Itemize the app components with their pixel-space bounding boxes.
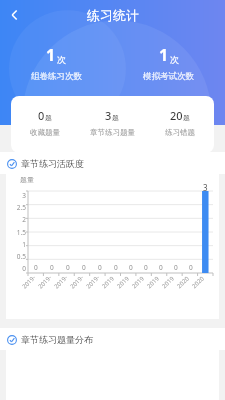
staticText: 0: [22, 264, 26, 273]
staticText: 收藏题量: [30, 128, 60, 137]
staticText: 2019-07: [84, 273, 101, 290]
staticText: 题量: [20, 175, 34, 184]
staticText: 0: [82, 263, 86, 272]
staticText: 2019-04: [36, 273, 53, 290]
button[interactable]: 0: [11, 96, 214, 153]
staticText: 题: [112, 113, 119, 122]
staticText: 练习统计: [87, 7, 139, 23]
staticText: 1: [159, 44, 169, 66]
staticText: 0: [34, 263, 38, 272]
staticText: 题: [45, 113, 52, 122]
staticText: 0: [144, 263, 148, 272]
staticText: 0: [129, 263, 133, 272]
staticText: 2019-10: [130, 274, 147, 290]
staticText: 3: [22, 191, 26, 200]
staticText: 0.5: [16, 252, 26, 261]
staticText: 次: [170, 54, 179, 65]
staticText: 0: [174, 263, 178, 272]
staticText: 2019-11: [145, 274, 162, 290]
staticText: 3: [105, 108, 112, 123]
staticText: 2.5: [16, 203, 26, 212]
staticText: 组卷练习次数: [31, 71, 82, 82]
staticText: 2019-08: [100, 274, 117, 290]
button[interactable]: 返回: [0, 0, 30, 30]
staticText: 2019-05: [52, 273, 69, 290]
staticText: 模拟考试次数: [143, 71, 194, 82]
staticText: 1.5: [16, 228, 26, 237]
staticText: 0: [159, 263, 163, 272]
staticText: 2020-02: [190, 274, 207, 290]
button[interactable]: 1: [0, 44, 112, 82]
button[interactable]: 0: [11, 108, 78, 137]
button[interactable]: 1: [112, 44, 225, 82]
staticText: 2019-06: [68, 273, 85, 290]
staticText: 2019-12: [160, 274, 177, 290]
staticText: 章节练习题量: [90, 128, 135, 137]
staticText: 2020-01: [175, 274, 192, 290]
staticText: 2: [22, 215, 26, 224]
staticText: 20: [170, 108, 183, 123]
staticText: 练习错题: [165, 128, 195, 137]
staticText: 章节练习活跃度: [21, 158, 84, 169]
staticText: 3: [203, 182, 208, 193]
staticText: 2019-09: [115, 274, 132, 290]
staticText: 0: [189, 263, 193, 272]
staticText: 0: [50, 263, 54, 272]
button[interactable]: 3: [78, 108, 146, 137]
staticText: 1: [22, 240, 26, 249]
staticText: 章节练习题量分布: [21, 334, 93, 345]
staticText: 0: [38, 108, 45, 123]
staticText: 次: [57, 54, 66, 65]
button[interactable]: 章节练习活跃度: [7, 158, 225, 169]
staticText: 0: [98, 263, 102, 272]
button[interactable]: 20: [146, 108, 214, 137]
staticText: 0: [66, 263, 70, 272]
button[interactable]: 章节练习题量分布: [7, 334, 225, 345]
staticText: 2019-03: [20, 273, 37, 290]
staticText: 1: [46, 44, 56, 66]
staticText: 0: [114, 263, 118, 272]
staticText: 题: [183, 113, 190, 122]
